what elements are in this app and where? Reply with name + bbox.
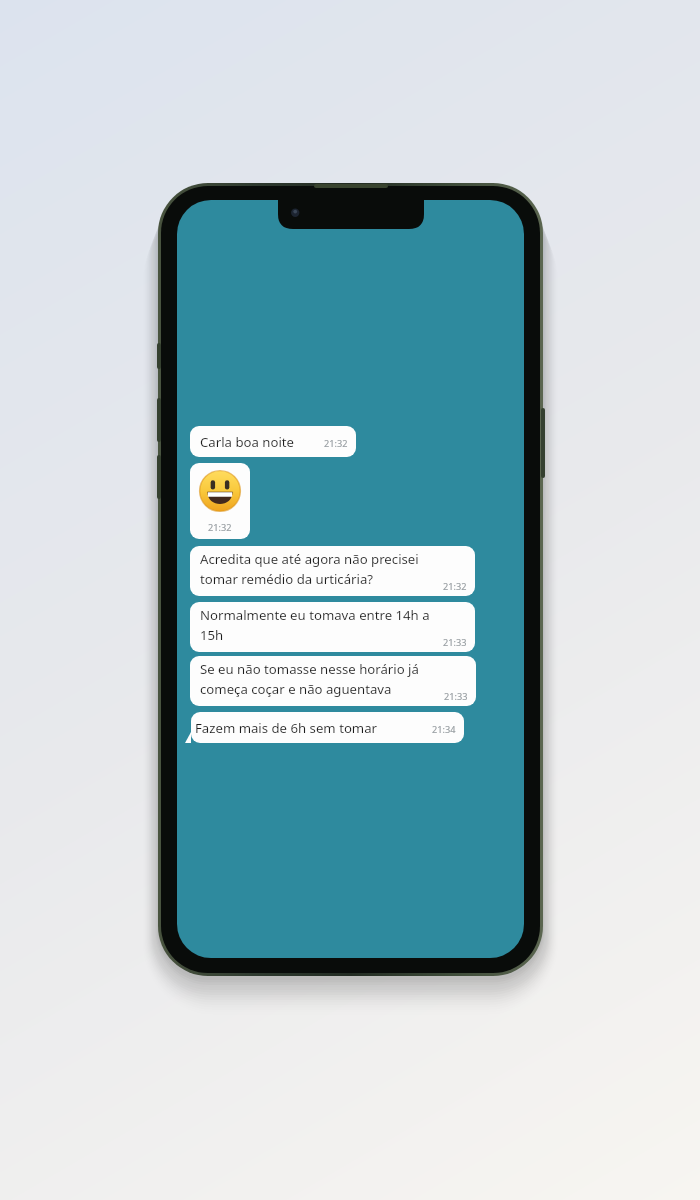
staticText: tomar remédio da urticária?: [200, 570, 374, 588]
staticText: 21:32: [208, 521, 232, 534]
staticText: começa coçar e não aguentava: [200, 680, 392, 698]
staticText: 21:32: [443, 580, 467, 593]
staticText: 15h: [200, 626, 224, 644]
staticText: 21:34: [432, 723, 456, 736]
button[interactable]: Grinning face emoji message: [190, 463, 250, 539]
button[interactable]: Mute: [157, 343, 161, 369]
button[interactable]: Volume down: [157, 455, 161, 499]
staticText: 21:32: [324, 437, 348, 450]
button[interactable]: Fazem mais de 6h sem tomar: [185, 712, 464, 743]
staticText: Carla boa noite: [200, 433, 295, 451]
staticText: 21:33: [443, 636, 467, 649]
button[interactable]: Acredita que até agora não precisei: [190, 546, 475, 596]
button[interactable]: Power: [541, 408, 545, 478]
staticText: Normalmente eu tomava entre 14h a: [200, 606, 430, 624]
staticText: 21:33: [444, 690, 468, 703]
staticText: Acredita que até agora não precisei: [200, 550, 419, 568]
button[interactable]: Volume up: [157, 398, 161, 442]
staticText: Fazem mais de 6h sem tomar: [195, 719, 378, 737]
button[interactable]: Carla boa noite: [190, 426, 356, 457]
staticText: Se eu não tomasse nesse horário já: [200, 660, 419, 678]
button[interactable]: Normalmente eu tomava entre 14h a: [190, 602, 475, 652]
button[interactable]: Se eu não tomasse nesse horário já: [190, 656, 476, 706]
